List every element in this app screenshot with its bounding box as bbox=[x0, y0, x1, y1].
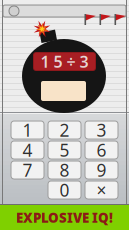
button[interactable]: 4 bbox=[11, 141, 44, 159]
staticText: EXPLOSIVE IQ! bbox=[16, 209, 113, 226]
staticText: 2 bbox=[59, 118, 69, 141]
staticText: 1 5 ÷ 3 bbox=[40, 51, 88, 72]
staticText: 3 bbox=[96, 118, 106, 141]
button[interactable]: 9 bbox=[85, 161, 118, 179]
button[interactable]: 2 bbox=[48, 121, 81, 139]
button[interactable]: 5 bbox=[48, 141, 81, 159]
button[interactable]: 0 bbox=[48, 181, 81, 199]
button[interactable]: 7 bbox=[11, 161, 44, 179]
staticText: 7 bbox=[22, 158, 32, 181]
staticText: 1 bbox=[22, 118, 32, 141]
staticText: 0 bbox=[59, 178, 69, 201]
staticText: 6 bbox=[96, 138, 106, 161]
staticText: 4 bbox=[22, 138, 32, 161]
button[interactable]: 8 bbox=[48, 161, 81, 179]
staticText: 5 bbox=[59, 138, 69, 161]
staticText: × bbox=[96, 178, 106, 201]
button[interactable]: 6 bbox=[85, 141, 118, 159]
button[interactable]: 3 bbox=[85, 121, 118, 139]
button[interactable]: 1 bbox=[11, 121, 44, 139]
staticText: 9 bbox=[96, 158, 106, 181]
staticText: 8 bbox=[59, 158, 69, 181]
button[interactable]: × bbox=[85, 181, 118, 199]
